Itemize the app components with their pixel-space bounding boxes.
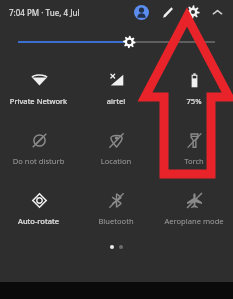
button[interactable]: Brightness (0, 33, 233, 51)
staticText: airtel (77, 96, 155, 106)
staticText: Aeroplane mode (155, 216, 233, 226)
staticText: Location (77, 156, 155, 166)
button[interactable]: Collapse (207, 2, 227, 22)
button[interactable]: Torch (155, 123, 233, 177)
button[interactable]: Edit tiles (156, 1, 178, 23)
button[interactable]: User account (130, 1, 152, 23)
button[interactable]: Bluetooth (77, 183, 155, 237)
button[interactable]: airtel (77, 63, 155, 117)
staticText: 75% (155, 96, 233, 106)
button[interactable]: 7:04 PM · Tue, 4 Jul (9, 7, 80, 18)
staticText: Torch (155, 156, 233, 166)
button[interactable]: Private Network (0, 63, 77, 117)
staticText: Bluetooth (77, 216, 155, 226)
button[interactable]: Location (77, 123, 155, 177)
staticText: Do not disturb (0, 156, 77, 166)
button[interactable]: Page 2 (119, 245, 123, 249)
button[interactable]: Do not disturb (0, 123, 77, 177)
button[interactable]: Auto-rotate (0, 183, 77, 237)
staticText: Auto-rotate (0, 216, 77, 226)
staticText: Private Network (0, 96, 77, 106)
button[interactable]: Page 1 (110, 245, 114, 249)
button[interactable]: Aeroplane mode (155, 183, 233, 237)
button[interactable]: Settings (182, 1, 204, 23)
staticText: 7:04 PM · Tue, 4 Jul (9, 7, 80, 18)
button[interactable]: 75% (155, 63, 233, 117)
